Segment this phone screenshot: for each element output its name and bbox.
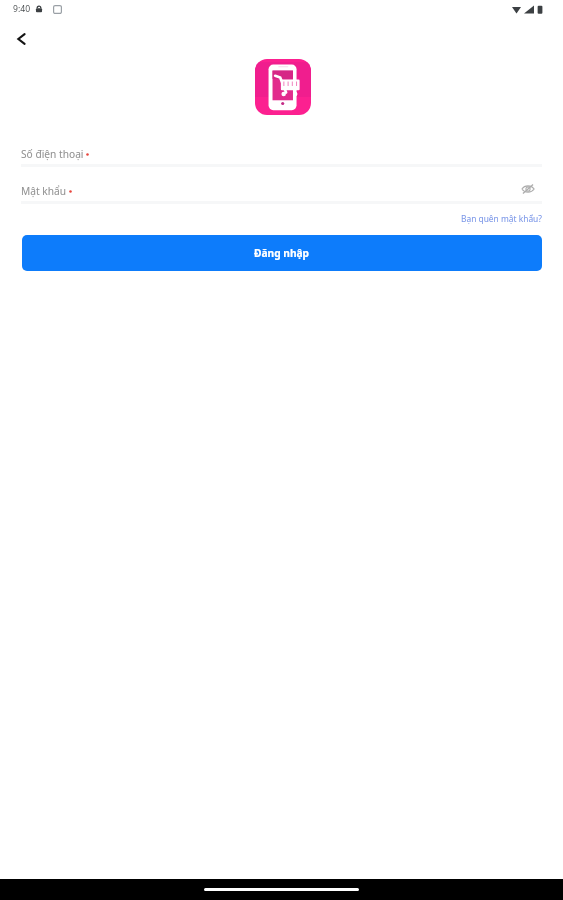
staticText: Đăng nhập [254, 246, 310, 260]
staticText: Số điện thoại [21, 147, 84, 161]
button[interactable]: Đăng nhập [22, 235, 542, 271]
staticText: 9:40 [13, 3, 31, 15]
button[interactable]: Bạn quên mật khẩu? [459, 211, 544, 226]
staticText: Bạn quên mật khẩu? [461, 213, 542, 224]
staticText: Mật khẩu [21, 184, 67, 198]
button[interactable]: Show password [515, 176, 541, 202]
button[interactable]: Back [7, 25, 35, 53]
